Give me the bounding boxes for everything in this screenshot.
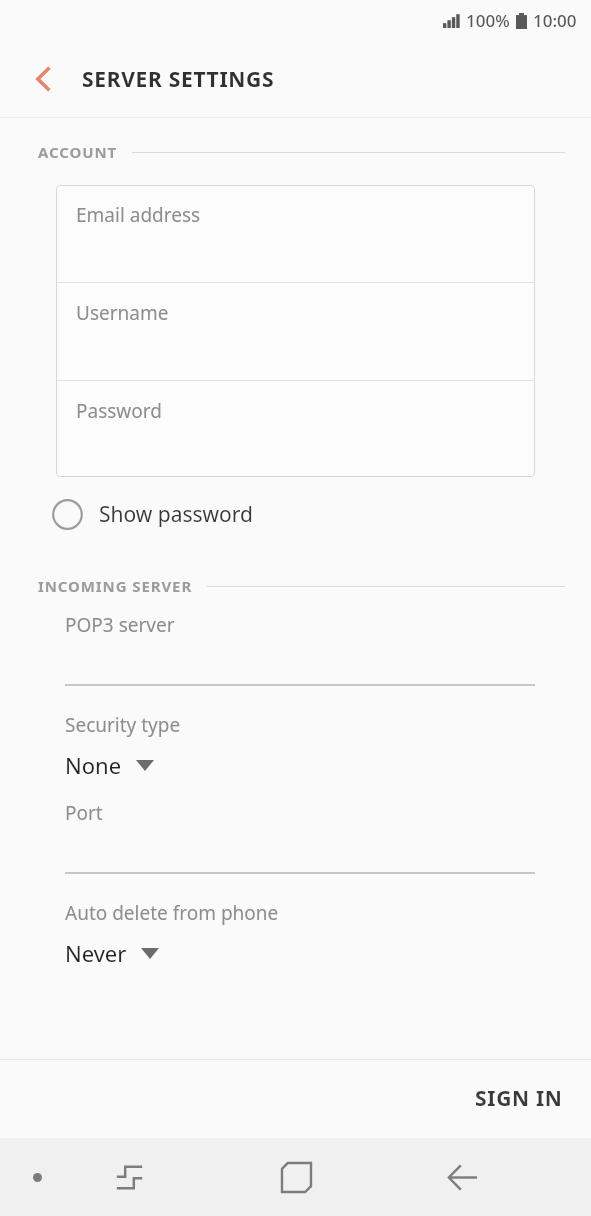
button[interactable]: Home [268,1149,324,1205]
button[interactable]: Menu [16,1156,58,1198]
button[interactable]: Password [56,381,535,476]
staticText: Show password [99,500,253,529]
staticText: Password [76,398,162,424]
staticText: Port [65,800,103,826]
staticText: Username [76,300,169,326]
staticText: None [65,750,122,780]
staticText: 10:00 [533,9,577,32]
staticText: 100% [466,9,510,32]
staticText: Never [65,938,127,968]
button[interactable]: Show password [42,489,263,540]
button[interactable]: SIGN IN [447,1066,591,1131]
button[interactable]: Recents [103,1151,155,1203]
button[interactable]: Back [436,1151,488,1203]
staticText: Security type [65,712,181,738]
staticText: Email address [76,202,201,228]
staticText: SERVER SETTINGS [82,65,275,94]
staticText: ACCOUNT [38,142,118,162]
button[interactable]: Port [0,800,591,874]
staticText: Auto delete from phone [65,900,279,926]
button[interactable]: Email address [56,185,535,282]
staticText: INCOMING SERVER [38,576,193,596]
button[interactable]: Username [56,283,535,380]
staticText: POP3 server [65,612,175,638]
button[interactable]: Security type [0,712,591,780]
staticText: SIGN IN [475,1084,563,1113]
button[interactable]: Auto delete from phone [0,900,591,968]
button[interactable]: Back [20,55,68,103]
button[interactable]: POP3 server [0,612,591,686]
